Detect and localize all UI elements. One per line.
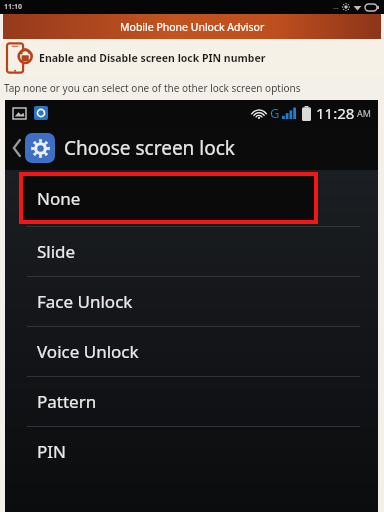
staticText: Pattern bbox=[37, 390, 97, 413]
button[interactable]: Voice Unlock bbox=[5, 327, 378, 376]
staticText: G bbox=[270, 104, 280, 122]
button[interactable]: PIN bbox=[5, 427, 378, 476]
button[interactable]: Slide bbox=[5, 227, 378, 276]
staticText: ... bbox=[333, 2, 339, 12]
staticText: None bbox=[37, 187, 81, 210]
staticText: Mobile Phone Unlock Advisor bbox=[120, 20, 265, 34]
staticText: 11:10 bbox=[4, 2, 22, 12]
button[interactable]: Settings bbox=[25, 133, 55, 163]
staticText: 11:28 bbox=[316, 103, 355, 123]
staticText: Tap none or you can select one of the ot… bbox=[4, 81, 301, 95]
button[interactable]: Back bbox=[11, 135, 23, 161]
staticText: Voice Unlock bbox=[37, 340, 139, 363]
staticText: Face Unlock bbox=[37, 290, 133, 313]
staticText: AM bbox=[357, 107, 371, 119]
button[interactable]: Pattern bbox=[5, 377, 378, 426]
button[interactable]: Back bbox=[5, 126, 378, 170]
button[interactable]: Face Unlock bbox=[5, 277, 378, 326]
staticText: Slide bbox=[37, 240, 76, 263]
staticText: PIN bbox=[37, 440, 66, 463]
staticText: Enable and Disable screen lock PIN numbe… bbox=[39, 51, 266, 65]
staticText: Choose screen lock bbox=[64, 135, 235, 161]
button[interactable]: None bbox=[5, 170, 378, 226]
